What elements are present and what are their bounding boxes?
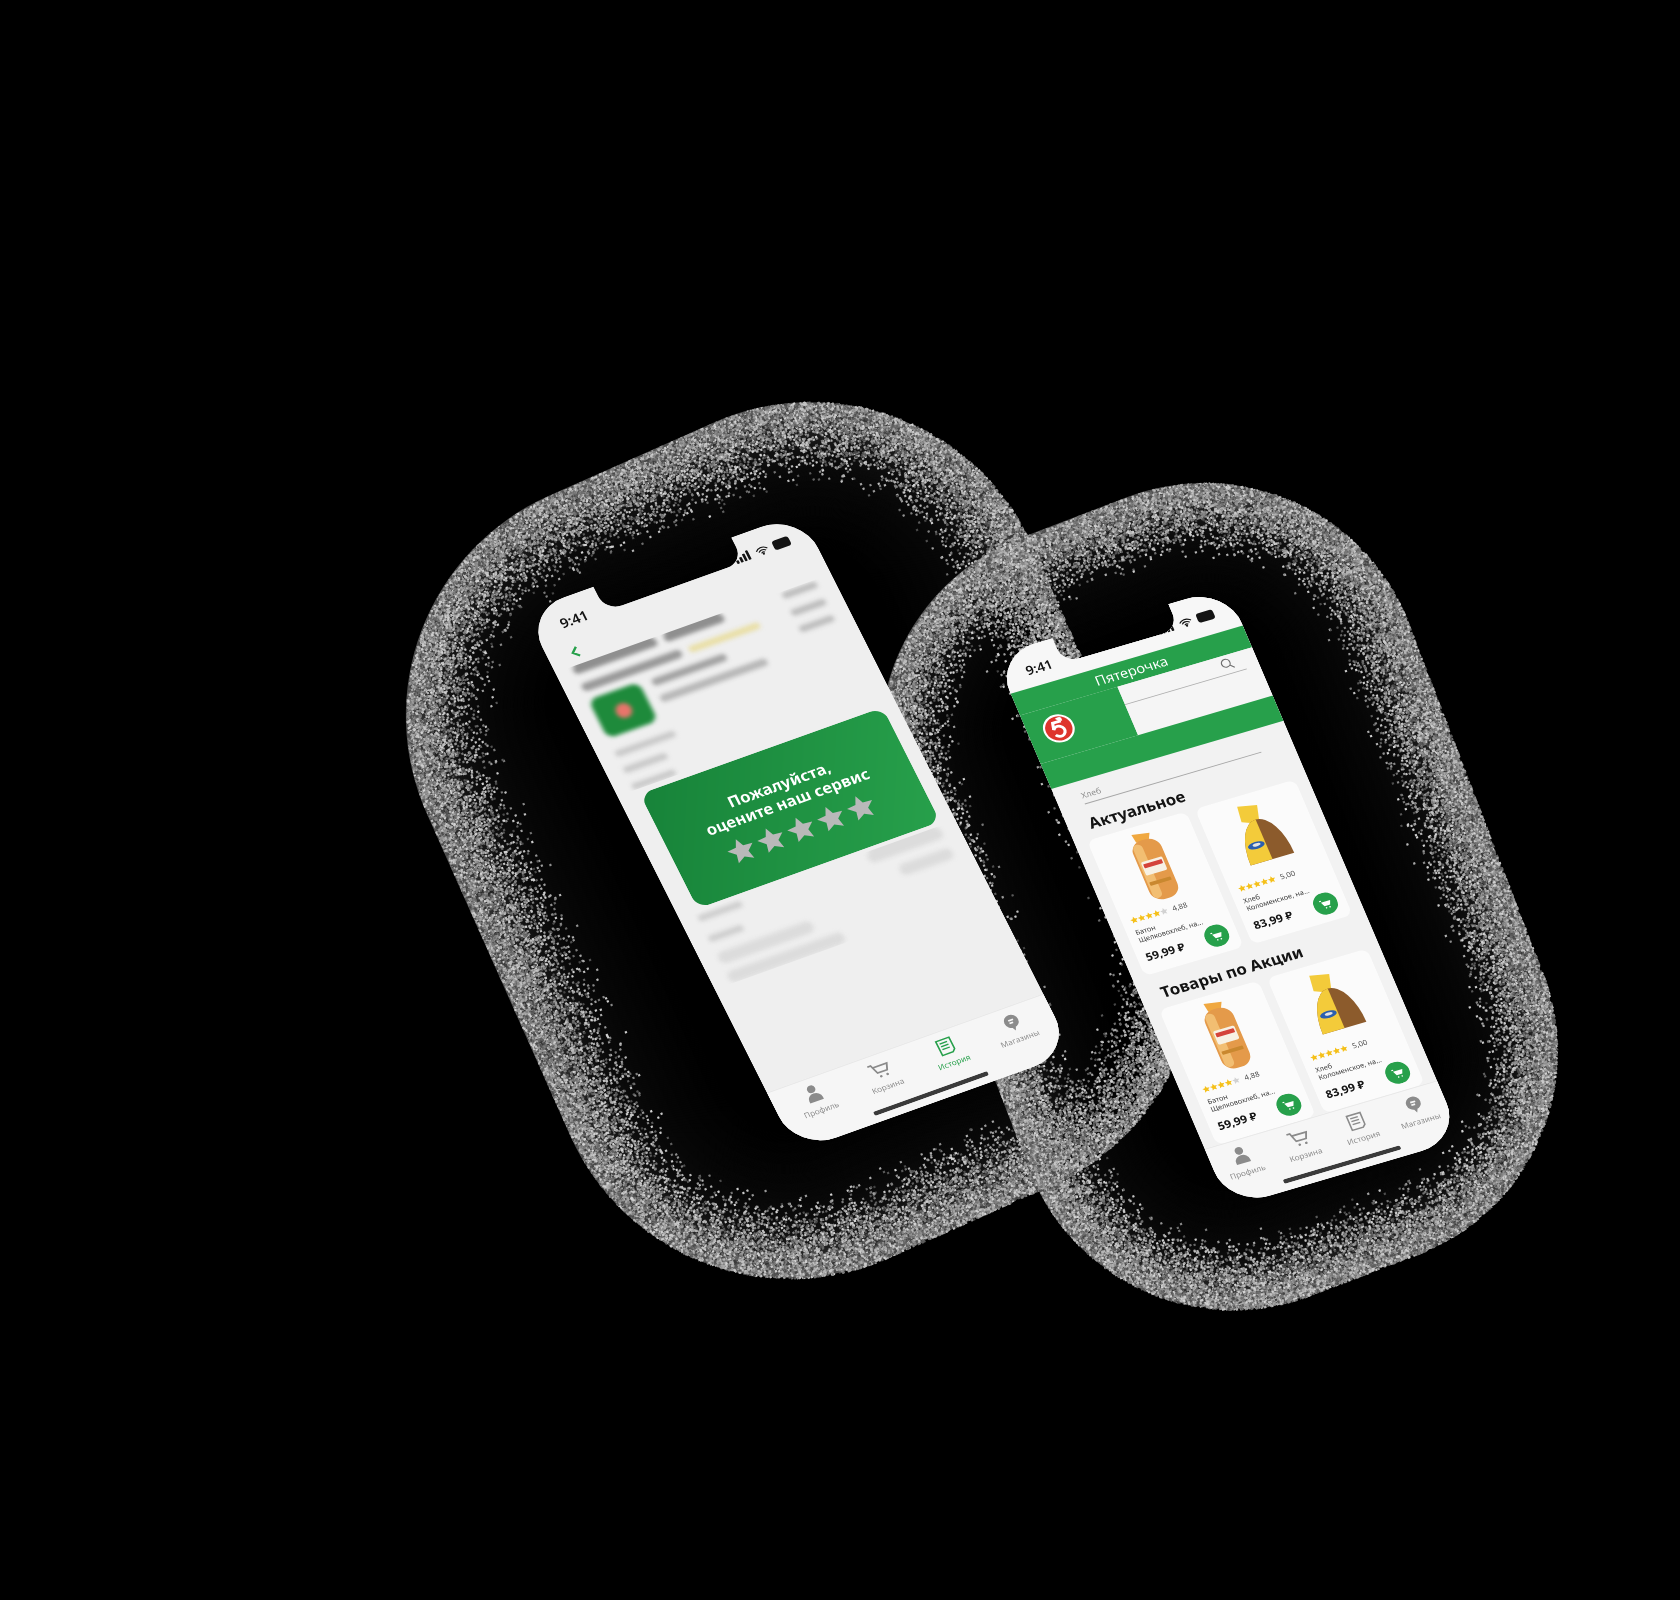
staticText: Актуальное <box>1085 786 1189 833</box>
button[interactable]: Rate 3 stars <box>782 812 820 845</box>
staticText: Профиль <box>1228 1162 1268 1182</box>
button[interactable]: Магазины <box>980 1004 1050 1053</box>
staticText: 59,99 ₽ <box>1215 1108 1260 1133</box>
button[interactable]: 5,00 <box>1195 779 1353 944</box>
button[interactable]: История <box>914 1027 984 1077</box>
button[interactable]: Магазины <box>1382 1087 1451 1134</box>
staticText: Профиль <box>802 1099 841 1121</box>
staticText: Хлеб <box>1079 784 1103 800</box>
staticText: Хлеб Коломенское, на… <box>1314 1047 1384 1083</box>
staticText: 83,99 ₽ <box>1323 1076 1368 1101</box>
staticText: 5,00 <box>1278 868 1297 881</box>
button[interactable]: История <box>1324 1104 1393 1151</box>
staticText: Корзина <box>870 1075 907 1097</box>
staticText: Корзина <box>1288 1145 1324 1165</box>
button[interactable]: Rate 2 stars <box>752 823 790 856</box>
staticText: 5,00 <box>1350 1037 1369 1050</box>
staticText: История <box>1345 1128 1382 1148</box>
staticText: 9:41 <box>556 606 591 632</box>
button[interactable]: Add to cart <box>1309 890 1342 917</box>
staticText: Батон Щелковохлеб, на… <box>1206 1079 1277 1114</box>
button[interactable]: Профиль <box>1209 1138 1278 1185</box>
button[interactable]: Пожалуйста, оцените наш сервис <box>640 707 940 909</box>
staticText: Пожалуйста, оцените наш сервис <box>693 746 873 840</box>
button[interactable]: Rate 4 stars <box>812 801 850 834</box>
button[interactable]: Add to cart <box>1273 1091 1305 1119</box>
staticText: 59,99 ₽ <box>1143 939 1188 964</box>
staticText: 4,88 <box>1242 1068 1261 1082</box>
button[interactable]: 5,00 <box>1267 948 1425 1114</box>
staticText: Хлеб Коломенское, на… <box>1241 878 1312 913</box>
button[interactable]: 4,88 <box>1159 980 1316 1145</box>
button[interactable]: Rate 1 stars <box>722 833 760 867</box>
staticText: Магазины <box>999 1027 1042 1051</box>
button[interactable]: 4,88 <box>1087 811 1244 976</box>
staticText: Магазины <box>1399 1110 1442 1132</box>
button[interactable]: Search <box>1117 647 1273 735</box>
button[interactable]: Корзина <box>848 1051 917 1101</box>
staticText: Товары по Акции <box>1157 941 1306 1002</box>
staticText: Батон Щелковохлеб, на… <box>1134 910 1205 945</box>
button[interactable]: Add to cart <box>1382 1059 1414 1087</box>
staticText: История <box>936 1052 973 1073</box>
staticText: 83,99 ₽ <box>1251 907 1295 932</box>
button[interactable]: Pyaterochka <box>1038 711 1079 746</box>
staticText: Пятерочка <box>1092 651 1171 689</box>
button[interactable]: Back <box>561 639 590 664</box>
button[interactable]: Корзина <box>1267 1121 1336 1168</box>
button[interactable]: Профиль <box>782 1075 851 1125</box>
button[interactable]: Rate 5 stars <box>842 791 880 824</box>
staticText: 4,88 <box>1170 899 1189 913</box>
button[interactable]: Add to cart <box>1201 922 1233 949</box>
staticText: 9:41 <box>1023 655 1055 679</box>
